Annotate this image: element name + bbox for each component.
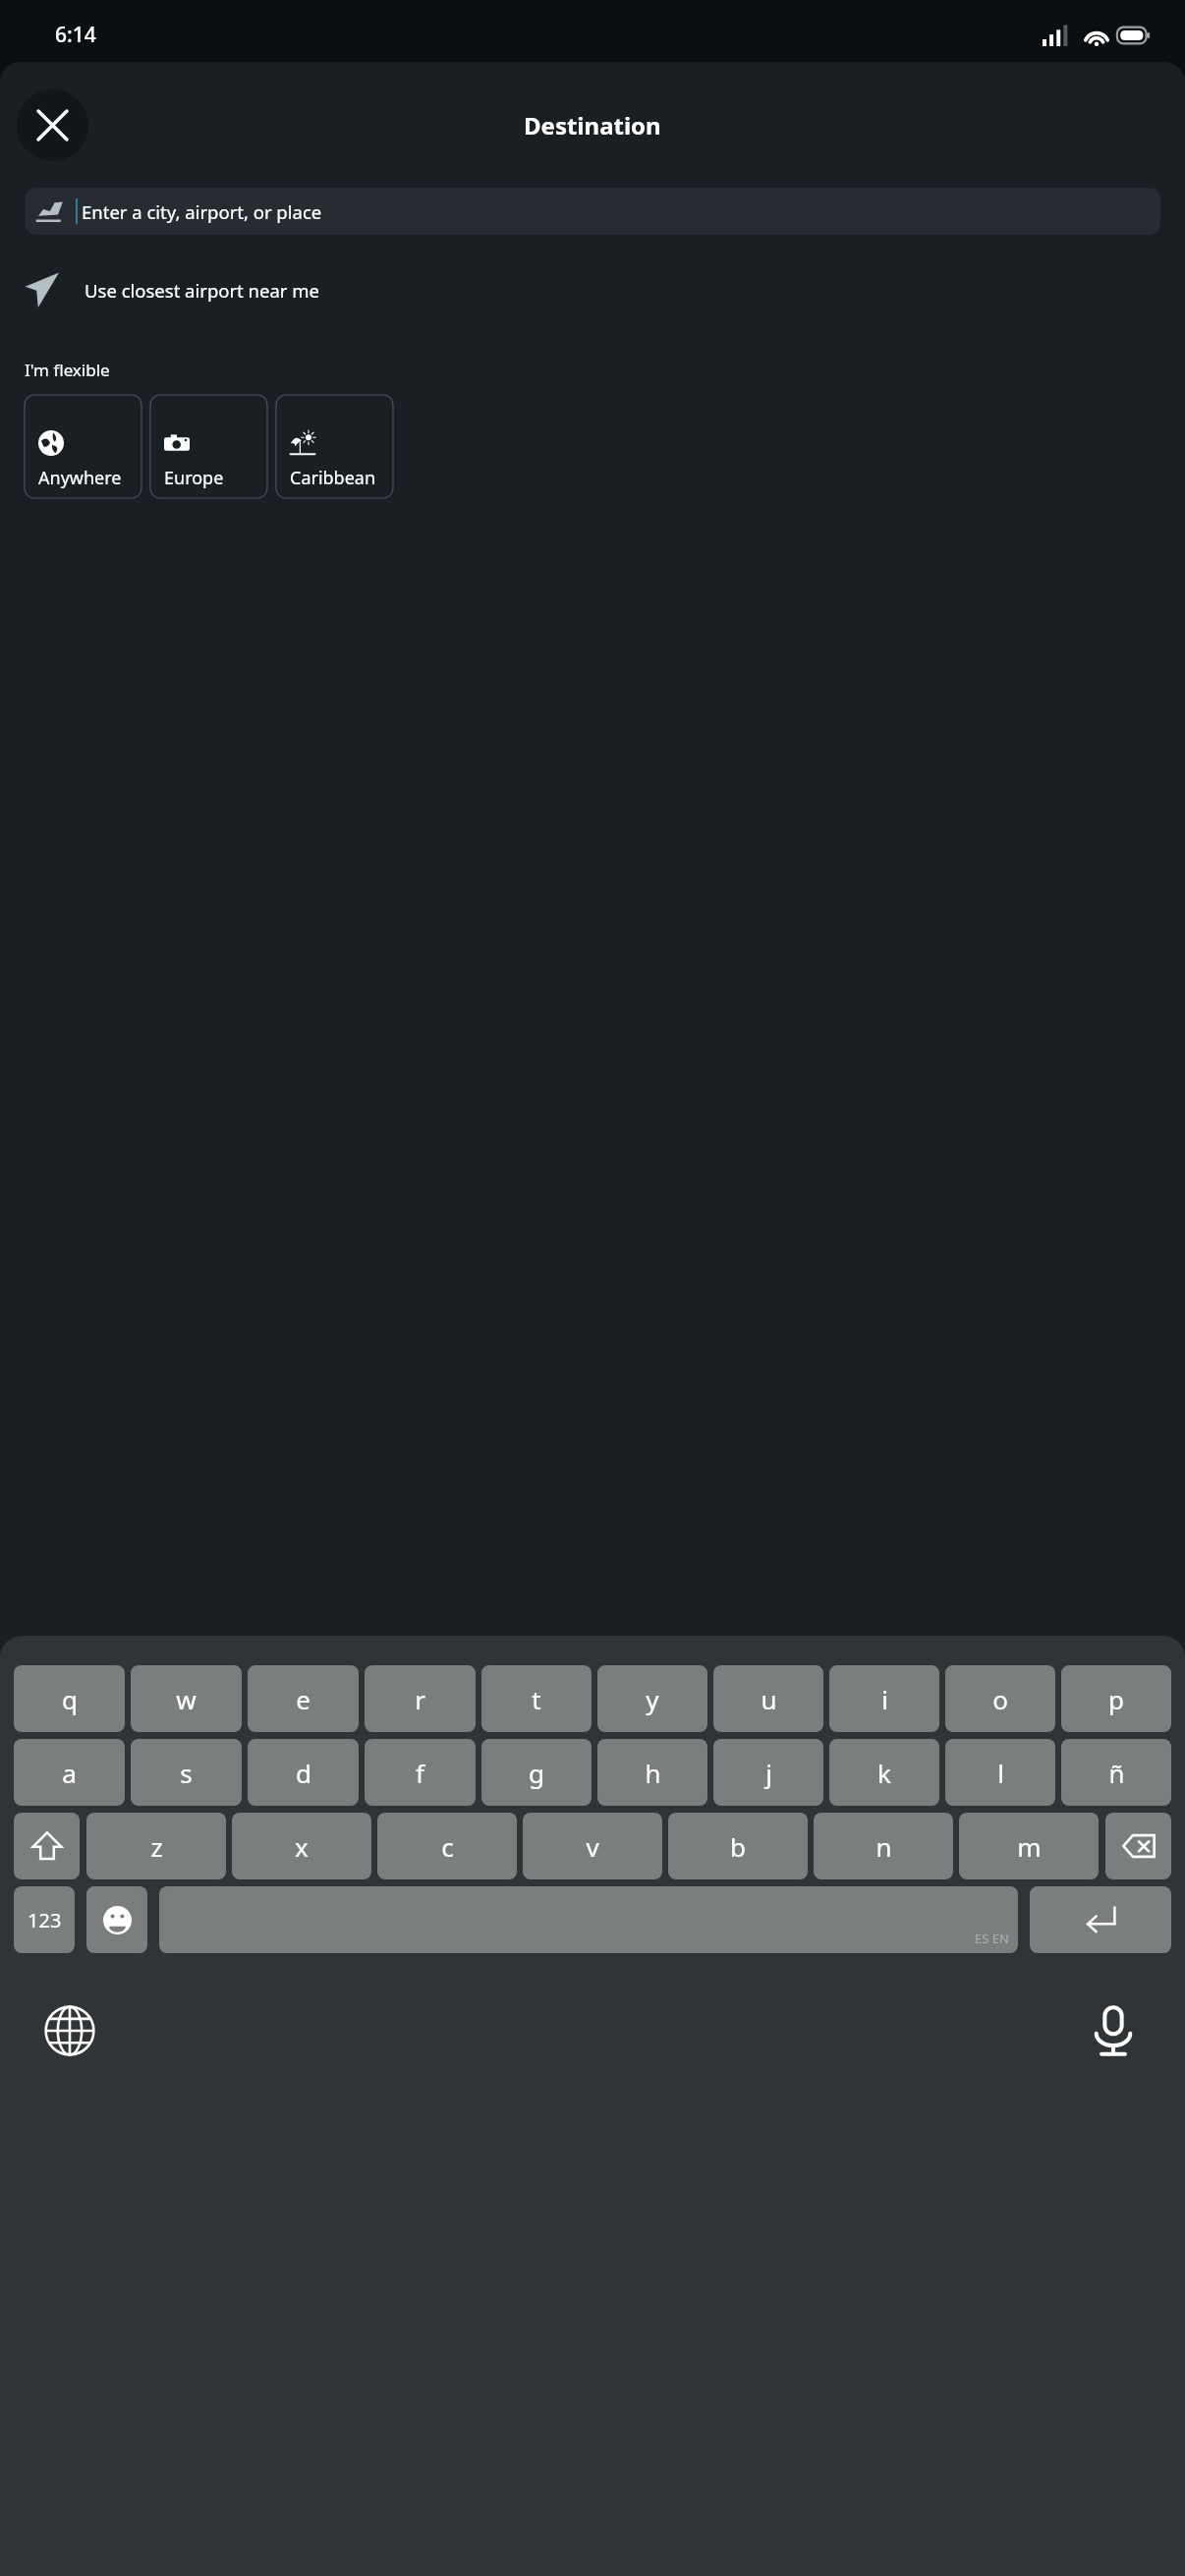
button[interactable]: t — [481, 1665, 592, 1732]
button[interactable]: Shift — [14, 1813, 80, 1879]
staticText: Enter a city, airport, or place — [82, 199, 322, 224]
button[interactable]: Voice input — [1081, 1998, 1146, 2063]
staticText: o — [992, 1682, 1008, 1716]
staticText: k — [877, 1756, 891, 1790]
staticText: x — [295, 1829, 309, 1864]
staticText: r — [415, 1682, 425, 1716]
staticText: f — [416, 1756, 424, 1790]
button[interactable]: f — [365, 1739, 476, 1806]
button[interactable]: g — [481, 1739, 592, 1806]
button[interactable]: 123 — [14, 1886, 75, 1953]
staticText: p — [1108, 1682, 1124, 1716]
staticText: m — [1017, 1829, 1042, 1864]
staticText: t — [532, 1682, 541, 1716]
button[interactable]: Change language — [37, 1998, 102, 2063]
staticText: I'm flexible — [25, 359, 110, 381]
staticText: n — [875, 1829, 892, 1864]
staticText: j — [765, 1756, 772, 1790]
button[interactable]: b — [668, 1813, 808, 1879]
button[interactable]: Backspace — [1105, 1813, 1171, 1879]
staticText: q — [62, 1682, 78, 1716]
button[interactable]: a — [14, 1739, 125, 1806]
staticText: g — [529, 1756, 544, 1790]
button[interactable]: l — [945, 1739, 1055, 1806]
button[interactable]: Enter — [1030, 1886, 1171, 1953]
button[interactable]: Close — [17, 89, 88, 161]
button[interactable]: e — [248, 1665, 359, 1732]
button[interactable]: Space — [159, 1886, 1018, 1953]
staticText: u — [761, 1682, 777, 1716]
button[interactable]: z — [86, 1813, 226, 1879]
button[interactable]: h — [597, 1739, 707, 1806]
staticText: d — [296, 1756, 311, 1790]
staticText: ES EN — [975, 1930, 1009, 1947]
button[interactable]: x — [232, 1813, 371, 1879]
staticText: v — [586, 1829, 599, 1864]
button[interactable]: n — [814, 1813, 953, 1879]
button[interactable]: q — [14, 1665, 125, 1732]
staticText: 6:14 — [55, 21, 96, 49]
button[interactable]: Europe — [150, 395, 267, 498]
staticText: Caribbean — [290, 466, 376, 490]
staticText: Anywhere — [38, 466, 122, 490]
staticText: ñ — [1108, 1756, 1125, 1790]
staticText: Europe — [164, 466, 224, 490]
staticText: c — [441, 1829, 454, 1864]
staticText: i — [881, 1682, 888, 1716]
staticText: s — [180, 1756, 193, 1790]
button[interactable]: Enter a city, airport, or place — [25, 188, 1160, 235]
button[interactable]: j — [713, 1739, 823, 1806]
staticText: Destination — [524, 109, 661, 141]
staticText: z — [150, 1829, 163, 1864]
staticText: Use closest airport near me — [85, 278, 320, 303]
staticText: l — [997, 1756, 1004, 1790]
button[interactable]: p — [1061, 1665, 1171, 1732]
button[interactable]: Emoji — [86, 1886, 147, 1953]
button[interactable]: m — [959, 1813, 1099, 1879]
button[interactable]: v — [523, 1813, 662, 1879]
staticText: a — [62, 1756, 77, 1790]
staticText: y — [646, 1682, 659, 1716]
button[interactable]: w — [131, 1665, 242, 1732]
button[interactable]: ñ — [1061, 1739, 1171, 1806]
button[interactable]: Anywhere — [25, 395, 141, 498]
button[interactable]: d — [248, 1739, 359, 1806]
staticText: w — [176, 1682, 197, 1716]
button[interactable]: r — [365, 1665, 476, 1732]
button[interactable]: i — [829, 1665, 939, 1732]
button[interactable]: y — [597, 1665, 707, 1732]
button[interactable]: Caribbean — [276, 395, 393, 498]
button[interactable]: s — [131, 1739, 242, 1806]
staticText: e — [296, 1682, 310, 1716]
button[interactable]: c — [377, 1813, 517, 1879]
button[interactable]: Use closest airport near me — [0, 254, 1185, 325]
staticText: h — [645, 1756, 661, 1790]
staticText: 123 — [28, 1907, 62, 1933]
button[interactable]: o — [945, 1665, 1055, 1732]
button[interactable]: u — [713, 1665, 823, 1732]
staticText: b — [730, 1829, 746, 1864]
button[interactable]: k — [829, 1739, 939, 1806]
